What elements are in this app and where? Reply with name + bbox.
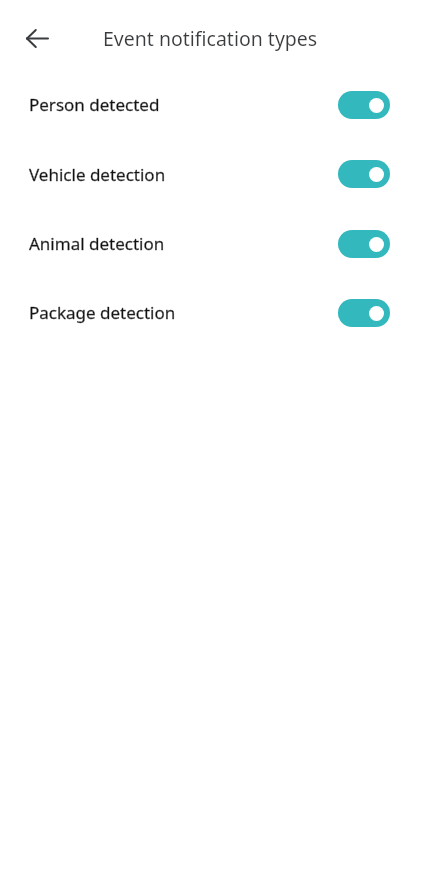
staticText: Vehicle detection xyxy=(29,163,166,186)
staticText: Person detected xyxy=(29,93,160,116)
staticText: Package detection xyxy=(29,301,176,324)
staticText: Package detection xyxy=(29,301,176,324)
staticText: Animal detection xyxy=(29,232,165,255)
staticText: Event notification types xyxy=(103,25,318,52)
button[interactable]: Toggle xyxy=(338,299,390,327)
button[interactable]: Vehicle detection xyxy=(0,139,426,209)
button[interactable]: Package detection xyxy=(0,278,426,347)
button[interactable]: Toggle xyxy=(338,91,390,119)
staticText: Animal detection xyxy=(29,232,165,255)
button[interactable]: Back xyxy=(13,14,61,62)
button[interactable]: Toggle xyxy=(338,230,390,258)
button[interactable]: Animal detection xyxy=(0,209,426,278)
button[interactable]: Toggle xyxy=(338,160,390,188)
button[interactable]: Person detected xyxy=(0,70,426,139)
staticText: Vehicle detection xyxy=(29,163,166,186)
staticText: Person detected xyxy=(29,93,160,116)
